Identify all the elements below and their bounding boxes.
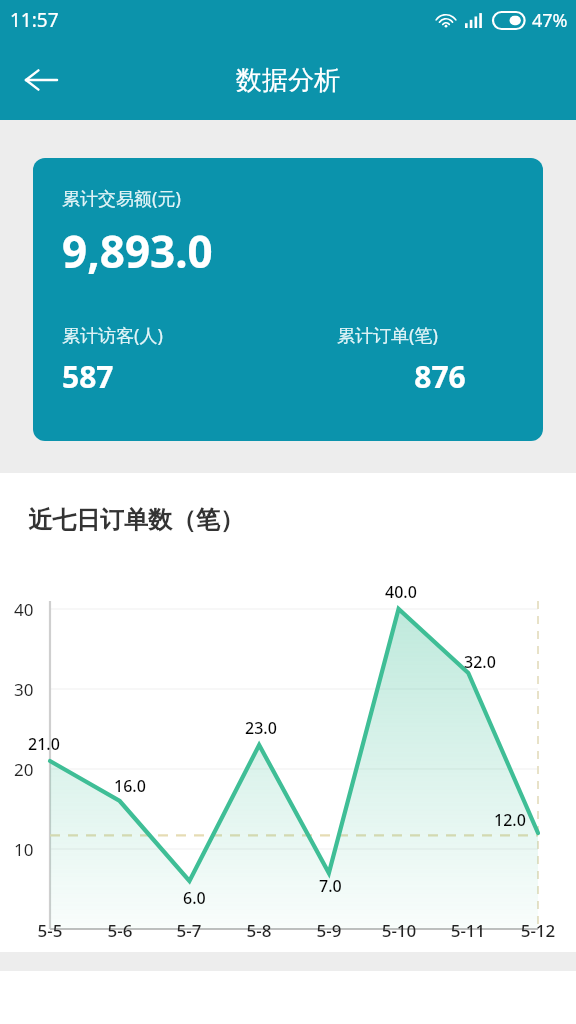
staticText: 10 — [14, 838, 34, 861]
staticText: 累计订单(笔) — [337, 323, 438, 348]
staticText: 5-11 — [446, 919, 490, 942]
staticText: 32.0 — [464, 651, 496, 673]
staticText: 587 — [62, 356, 114, 397]
staticText: 6.0 — [183, 887, 206, 909]
button[interactable]: 累计交易额(元) — [33, 158, 543, 441]
staticText: 40.0 — [385, 581, 417, 603]
staticText: 21.0 — [28, 733, 60, 755]
staticText: 5-12 — [516, 919, 560, 942]
staticText: 20 — [14, 758, 34, 781]
staticText: 5-8 — [237, 919, 281, 942]
staticText: 5-9 — [307, 919, 351, 942]
staticText: 30 — [14, 678, 34, 701]
staticText: 5-10 — [377, 919, 421, 942]
staticText: 16.0 — [114, 775, 146, 797]
button[interactable]: Back — [12, 51, 70, 109]
staticText: 5-6 — [98, 919, 142, 942]
staticText: 876 — [337, 356, 543, 397]
staticText: 40 — [14, 598, 34, 621]
staticText: 23.0 — [245, 717, 277, 739]
staticText: 7.0 — [319, 875, 342, 897]
staticText: 数据分析 — [236, 64, 340, 97]
staticText: 5-5 — [28, 919, 72, 942]
staticText: 累计交易额(元) — [62, 186, 181, 211]
staticText: 5-7 — [167, 919, 211, 942]
staticText: 11:57 — [10, 7, 59, 33]
staticText: 累计访客(人) — [62, 323, 163, 348]
staticText: 9,893.0 — [62, 221, 213, 281]
staticText: 47% — [532, 8, 568, 33]
staticText: 12.0 — [494, 809, 526, 831]
staticText: 近七日订单数（笔） — [28, 505, 244, 535]
